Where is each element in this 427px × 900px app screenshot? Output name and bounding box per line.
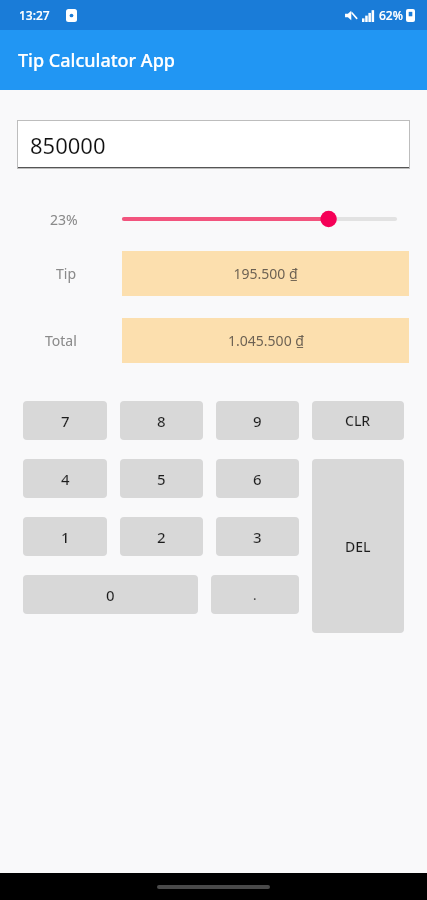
button[interactable]: . [211,575,299,614]
staticText: Tip [56,264,77,283]
button[interactable]: 2 [120,517,203,556]
button[interactable]: DEL [312,459,404,633]
button[interactable]: 8 [120,401,203,440]
button[interactable]: 7 [23,401,107,440]
staticText: 8 [157,411,166,431]
staticText: . [253,586,257,604]
button[interactable]: 1 [23,517,107,556]
button[interactable]: 850000 [17,120,410,169]
staticText: 2 [157,527,166,547]
staticText: 5 [157,469,166,489]
staticText: 13:27 [19,7,50,23]
staticText: 850000 [30,130,106,160]
button[interactable]: 9 [216,401,299,440]
staticText: DEL [345,537,371,556]
staticText: 195.500 ₫ [233,264,298,283]
staticText: 3 [253,527,262,547]
staticText: 0 [106,585,115,605]
staticText: CLR [345,411,371,430]
staticText: Tip Calculator App [18,48,175,73]
staticText: 6 [253,469,262,489]
button[interactable]: 6 [216,459,299,498]
button[interactable]: CLR [312,401,404,440]
button[interactable]: 3 [216,517,299,556]
staticText: 7 [61,411,70,431]
staticText: 9 [253,411,262,431]
staticText: 23% [50,210,78,229]
button[interactable]: 0 [23,575,198,614]
staticText: 4 [61,469,70,489]
staticText: 1.045.500 ₫ [228,331,304,350]
staticText: Total [45,331,77,350]
button[interactable]: Tip percentage slider [124,206,395,232]
staticText: 62% [379,7,403,23]
button[interactable]: 5 [120,459,203,498]
staticText: 1 [61,527,70,547]
button[interactable]: 4 [23,459,107,498]
